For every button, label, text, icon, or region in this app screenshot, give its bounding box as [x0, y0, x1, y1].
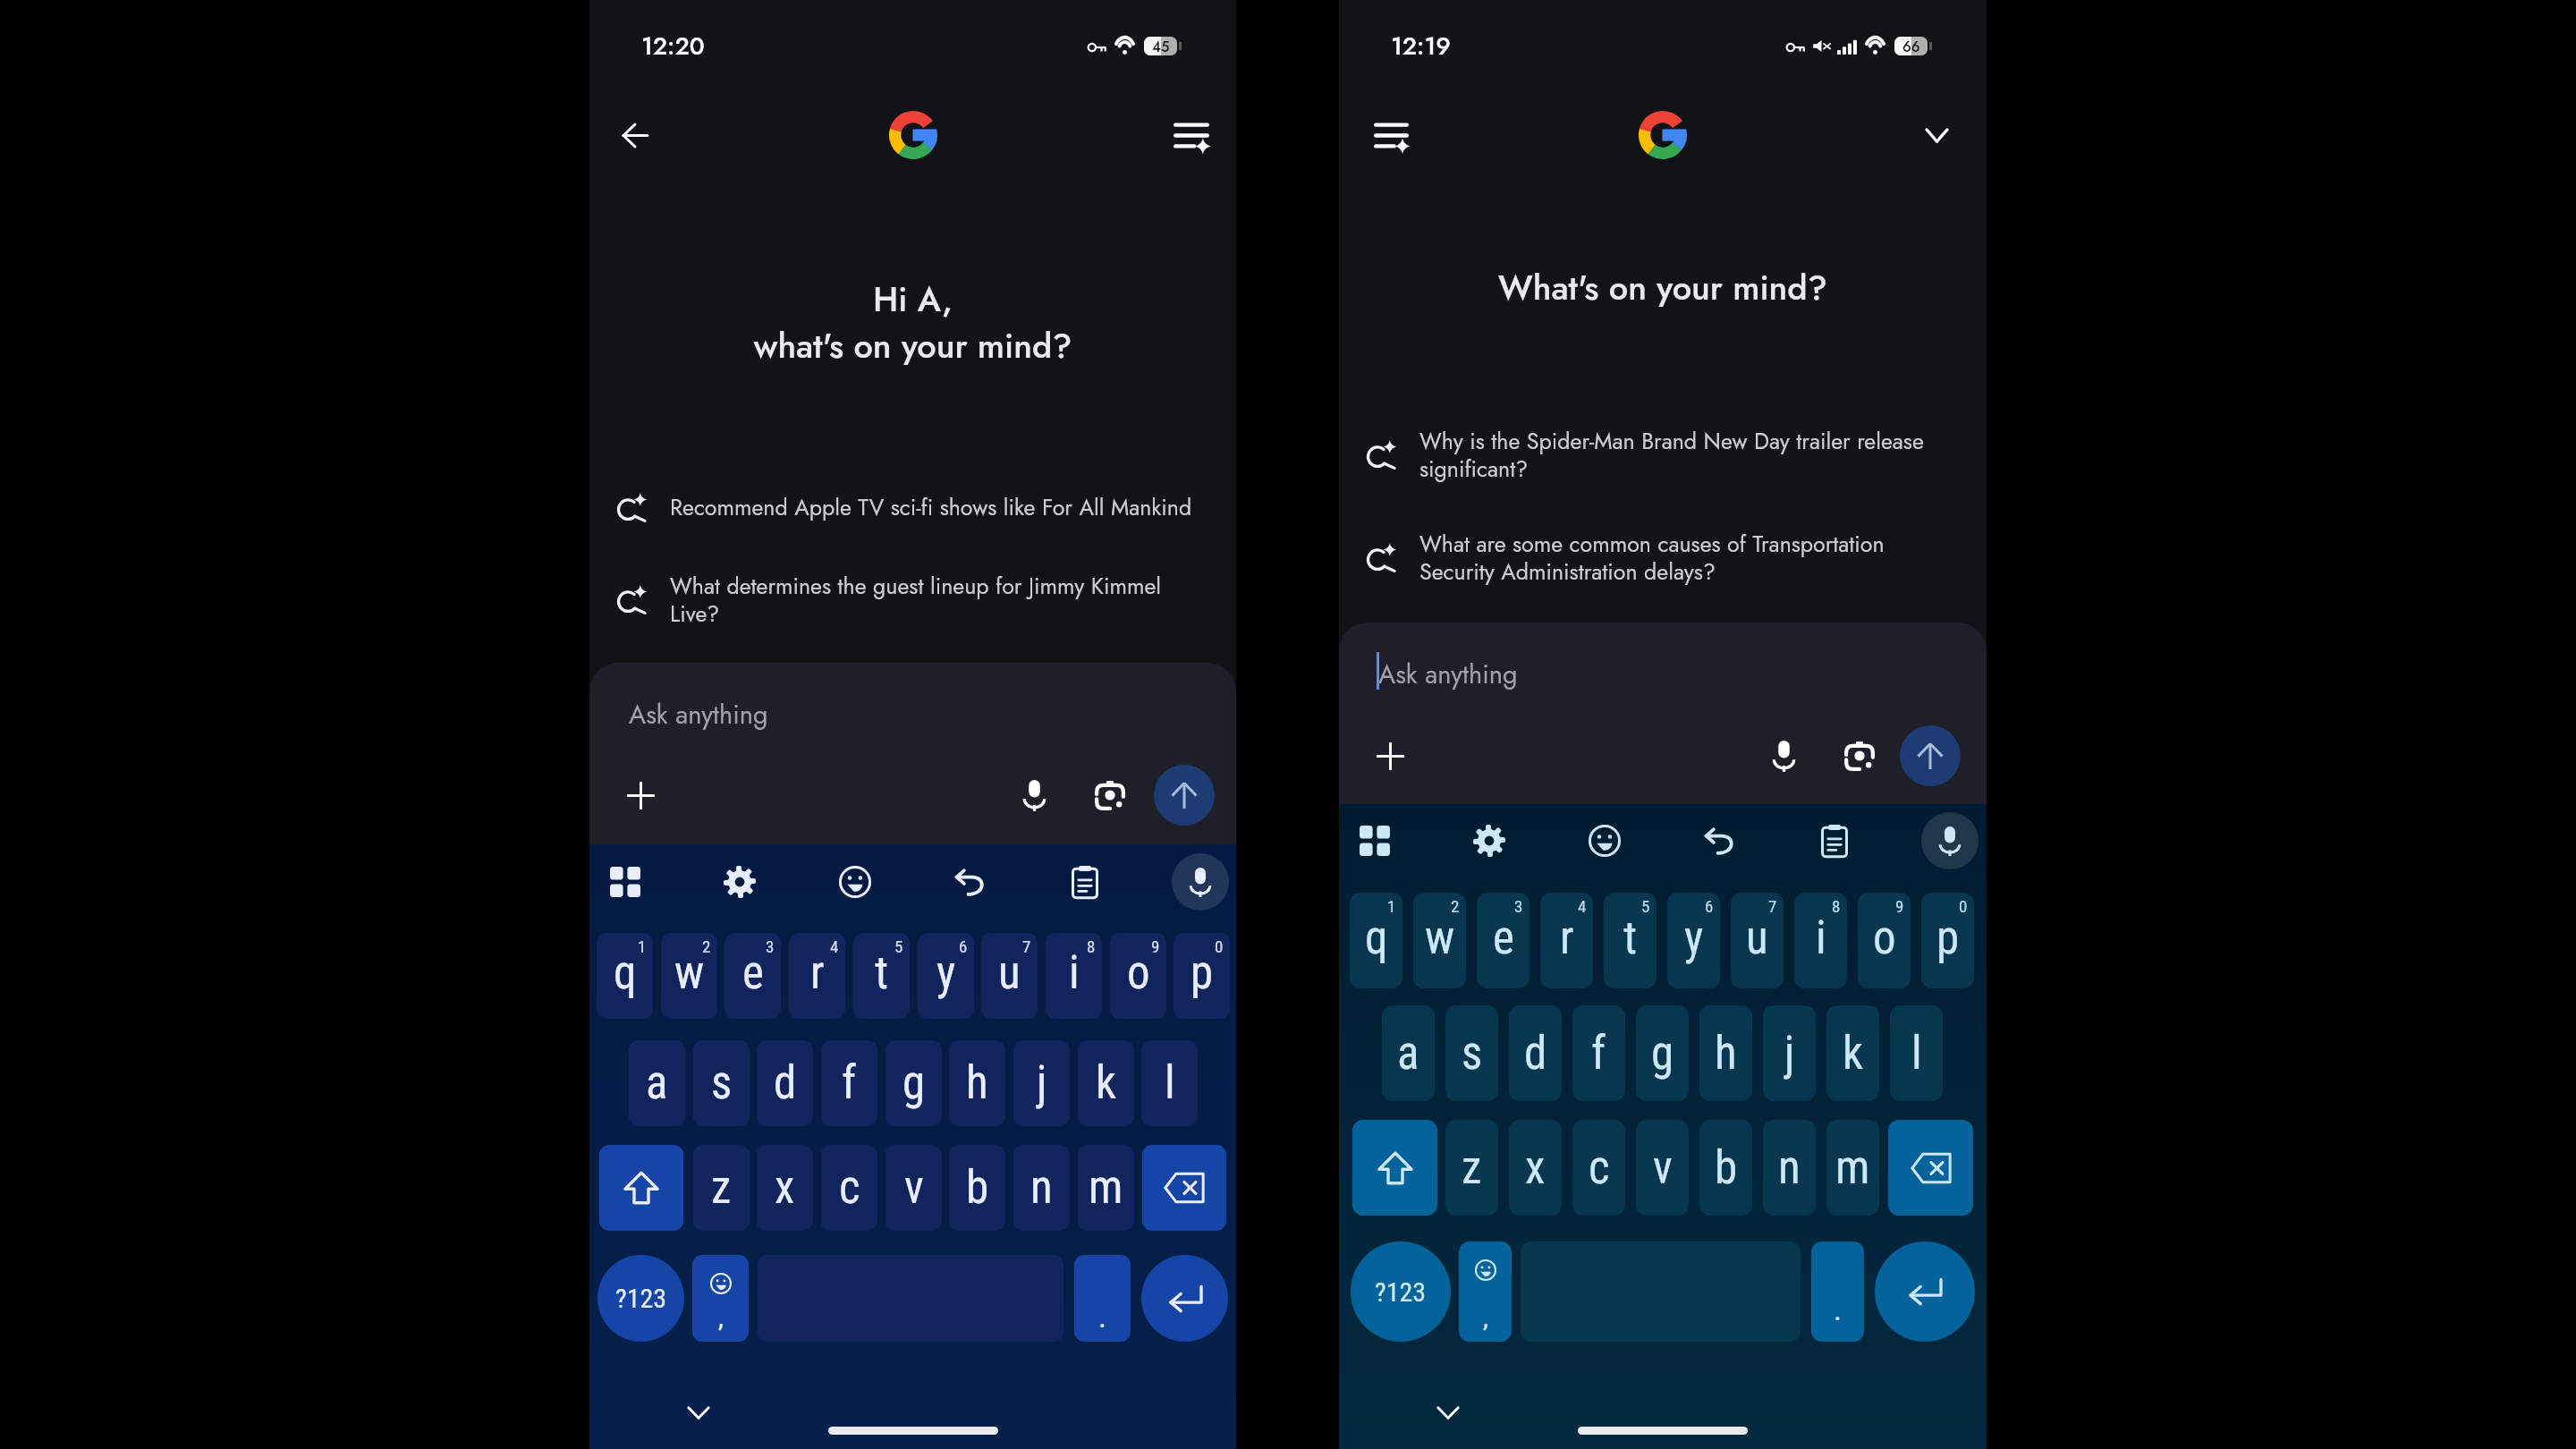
button[interactable]: s	[1445, 1005, 1498, 1101]
button[interactable]: l	[1141, 1040, 1198, 1126]
button[interactable]: x	[1509, 1120, 1562, 1216]
button[interactable]: Backspace	[1888, 1120, 1973, 1216]
button[interactable]: 5	[853, 933, 910, 1019]
button[interactable]: Why is the Spider-Man Brand New Day trai…	[1339, 411, 1987, 497]
button[interactable]: 6	[1667, 893, 1720, 988]
button[interactable]: 3	[724, 933, 781, 1019]
button[interactable]: Google Lens	[1083, 768, 1137, 822]
button[interactable]: Undo	[943, 855, 996, 909]
button[interactable]: Clipboard	[1058, 855, 1112, 909]
button[interactable]: Enter	[1141, 1255, 1228, 1342]
button[interactable]: 8	[1046, 933, 1102, 1019]
button[interactable]: d	[757, 1040, 813, 1126]
button[interactable]: l	[1890, 1005, 1943, 1101]
button[interactable]: b	[949, 1145, 1005, 1231]
button[interactable]: 4	[1540, 893, 1593, 988]
button[interactable]: 9	[1858, 893, 1911, 988]
button[interactable]: h	[1699, 1005, 1752, 1101]
button[interactable]: k	[1078, 1040, 1134, 1126]
button[interactable]: Switch keyboard	[1348, 814, 1402, 868]
button[interactable]: 7	[981, 933, 1038, 1019]
button[interactable]: 1	[1350, 893, 1402, 988]
button[interactable]: Recent chats	[1165, 108, 1218, 162]
button[interactable]: a	[629, 1040, 685, 1126]
button[interactable]: Hide keyboard	[677, 1391, 720, 1434]
button[interactable]: 9	[1110, 933, 1166, 1019]
staticText: g	[1651, 1027, 1674, 1080]
button[interactable]: m	[1826, 1120, 1879, 1216]
button[interactable]: d	[1509, 1005, 1562, 1101]
button[interactable]: .	[1811, 1241, 1864, 1342]
button[interactable]: 0	[1174, 933, 1230, 1019]
button[interactable]: Send	[1900, 725, 1961, 786]
button[interactable]: .	[1074, 1255, 1131, 1342]
button[interactable]: Enter	[1875, 1241, 1975, 1342]
button[interactable]: ?123	[1351, 1241, 1451, 1342]
button[interactable]: a	[1382, 1005, 1435, 1101]
button[interactable]: Hide keyboard	[1427, 1391, 1470, 1434]
button[interactable]: j	[1013, 1040, 1070, 1126]
button[interactable]: Emoji	[1578, 814, 1631, 868]
button[interactable]: Settings	[713, 855, 767, 909]
button[interactable]: Undo	[1692, 814, 1746, 868]
button[interactable]: c	[1572, 1120, 1625, 1216]
button[interactable]: What determines the guest lineup for Jim…	[589, 556, 1236, 642]
button[interactable]: 3	[1477, 893, 1529, 988]
button[interactable]: Voice typing	[1921, 812, 1979, 869]
button[interactable]: 7	[1731, 893, 1784, 988]
button[interactable]: Recommend Apple TV sci-fi shows like For…	[589, 464, 1236, 550]
button[interactable]: 5	[1604, 893, 1657, 988]
button[interactable]: Settings	[1462, 814, 1516, 868]
button[interactable]: Emoji and comma	[692, 1255, 749, 1342]
button[interactable]: b	[1699, 1120, 1752, 1216]
button[interactable]: j	[1763, 1005, 1816, 1101]
button[interactable]: c	[821, 1145, 877, 1231]
staticText: 9	[1895, 896, 1904, 916]
button[interactable]: ?123	[597, 1255, 684, 1342]
button[interactable]: Backspace	[1142, 1145, 1226, 1231]
button[interactable]: g	[1636, 1005, 1689, 1101]
button[interactable]: Shift	[599, 1145, 683, 1231]
button[interactable]: k	[1826, 1005, 1879, 1101]
button[interactable]: Send	[1154, 765, 1215, 826]
button[interactable]: Shift	[1352, 1120, 1437, 1216]
button[interactable]: n	[1763, 1120, 1816, 1216]
button[interactable]: Switch keyboard	[598, 855, 652, 909]
button[interactable]: x	[757, 1145, 813, 1231]
button[interactable]: v	[1636, 1120, 1689, 1216]
staticText: ,	[1483, 1301, 1488, 1333]
button[interactable]: Emoji	[828, 855, 882, 909]
button[interactable]: Voice search	[1757, 729, 1810, 783]
button[interactable]: 4	[789, 933, 845, 1019]
button[interactable]: m	[1078, 1145, 1134, 1231]
button[interactable]: Clipboard	[1808, 814, 1861, 868]
button[interactable]: What are some common causes of Transport…	[1339, 514, 1987, 600]
button[interactable]: z	[1445, 1120, 1498, 1216]
button[interactable]: 6	[918, 933, 974, 1019]
button[interactable]: Collapse	[1910, 108, 1963, 162]
button[interactable]: 8	[1794, 893, 1847, 988]
button[interactable]: Voice typing	[1172, 853, 1229, 911]
button[interactable]: 2	[661, 933, 717, 1019]
button[interactable]: Add	[614, 768, 667, 822]
button[interactable]: n	[1013, 1145, 1070, 1231]
button[interactable]: 2	[1413, 893, 1466, 988]
button[interactable]: v	[885, 1145, 942, 1231]
button[interactable]: 0	[1921, 893, 1974, 988]
button[interactable]: Recent chats	[1364, 108, 1418, 162]
button[interactable]: Back	[608, 108, 662, 162]
button[interactable]: g	[885, 1040, 942, 1126]
button[interactable]: h	[949, 1040, 1005, 1126]
button[interactable]: s	[693, 1040, 750, 1126]
button[interactable]: f	[1572, 1005, 1625, 1101]
button[interactable]: Emoji and comma	[1459, 1241, 1512, 1342]
staticText: p	[1191, 946, 1214, 1000]
button[interactable]: z	[693, 1145, 750, 1231]
button[interactable]: 1	[597, 933, 653, 1019]
button[interactable]: Add	[1363, 729, 1417, 783]
button[interactable]: Google Lens	[1833, 729, 1886, 783]
button[interactable]: f	[821, 1040, 877, 1126]
button[interactable]: Voice search	[1007, 768, 1061, 822]
